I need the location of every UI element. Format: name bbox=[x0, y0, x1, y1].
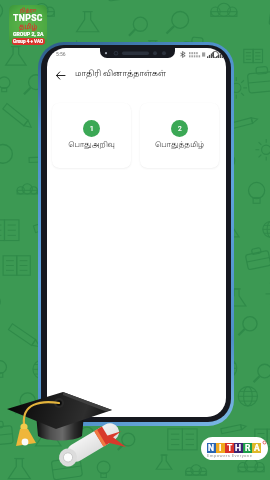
staticText: N bbox=[208, 443, 215, 453]
staticText: மாதிரி வினாத்தாள்கள் bbox=[75, 69, 167, 84]
staticText: A bbox=[254, 443, 260, 453]
staticText: R bbox=[245, 443, 251, 453]
staticText: தமிழ் bbox=[19, 23, 38, 31]
staticText: 5:56 bbox=[56, 51, 66, 57]
staticText: GROUP 2, 2A bbox=[13, 31, 44, 37]
button[interactable]: Nithra bbox=[201, 437, 268, 460]
staticText: Group 4 + VAO bbox=[13, 39, 44, 44]
staticText: நித்ரா bbox=[20, 7, 37, 13]
staticText: Empowers Everyone bbox=[207, 453, 253, 458]
staticText: H bbox=[235, 443, 242, 453]
staticText: TNPSC bbox=[13, 13, 43, 23]
staticText: 2 bbox=[178, 125, 182, 133]
button[interactable]: நித்ரா bbox=[9, 5, 47, 45]
button[interactable]: Back bbox=[53, 68, 68, 83]
button[interactable]: 1 bbox=[52, 103, 131, 168]
button[interactable]: 2 bbox=[140, 103, 219, 168]
staticText: பொதுஅறிவு bbox=[68, 141, 115, 150]
staticText: I bbox=[219, 443, 222, 453]
staticText: பொதுத்தமிழ் bbox=[155, 141, 204, 150]
staticText: 1 bbox=[90, 125, 94, 133]
staticText: T bbox=[227, 443, 233, 453]
